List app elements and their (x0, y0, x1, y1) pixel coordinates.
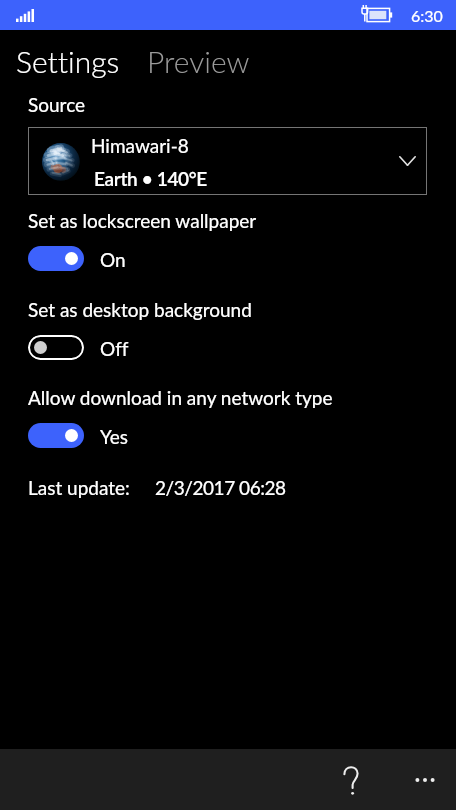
button[interactable]: Help (325, 749, 383, 810)
button[interactable]: More options (396, 749, 454, 810)
staticText: Off (100, 336, 129, 360)
staticText: Yes (100, 424, 129, 448)
button[interactable]: Preview (147, 42, 250, 79)
staticText: 2/3/2017 06:28 (155, 475, 286, 499)
staticText: Himawari-8 (91, 133, 189, 157)
staticText: Set as lockscreen wallpaper (28, 208, 257, 232)
staticText: Preview (147, 42, 250, 79)
staticText: Source (28, 92, 86, 116)
staticText: On (100, 247, 126, 271)
staticText: Settings (16, 42, 120, 79)
staticText: Earth • 140°E (94, 166, 207, 190)
staticText: Last update: (28, 475, 130, 499)
button[interactable]: Settings (16, 42, 120, 79)
button[interactable]: On (28, 246, 126, 271)
staticText: Allow download in any network type (28, 385, 333, 409)
button[interactable]: Off (28, 335, 129, 360)
button[interactable]: Himawari-8 (28, 127, 427, 195)
button[interactable]: Yes (28, 423, 129, 448)
staticText: Set as desktop background (28, 297, 252, 321)
staticText: 6:30 (411, 6, 443, 26)
